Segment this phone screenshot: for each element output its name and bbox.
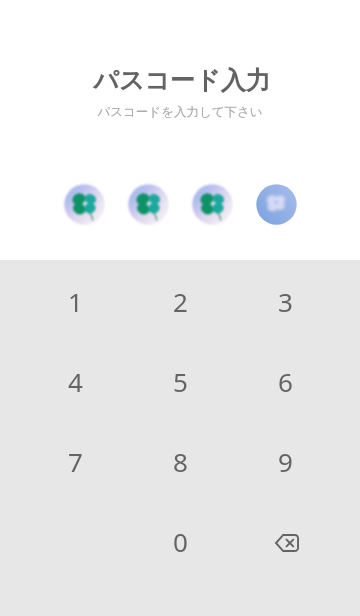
staticText: 8: [173, 444, 188, 479]
button[interactable]: 3: [233, 261, 338, 341]
staticText: 0: [173, 524, 188, 559]
staticText: 7: [68, 444, 83, 479]
staticText: 4: [68, 364, 83, 399]
button[interactable]: 4: [22, 341, 128, 421]
button[interactable]: 9: [233, 421, 338, 501]
button[interactable]: 2: [128, 261, 233, 341]
staticText: 9: [278, 444, 293, 479]
staticText: 3: [278, 284, 293, 319]
button[interactable]: Delete: [233, 501, 338, 581]
staticText: パスコード入力: [2, 65, 360, 96]
button[interactable]: 1: [22, 261, 128, 341]
button[interactable]: 5: [128, 341, 233, 421]
staticText: 2: [173, 284, 188, 319]
button[interactable]: 0: [128, 501, 233, 581]
staticText: 6: [278, 364, 293, 399]
staticText: 5: [173, 364, 188, 399]
button[interactable]: 7: [22, 421, 128, 501]
button[interactable]: 6: [233, 341, 338, 421]
staticText: パスコードを入力して下さい: [0, 104, 360, 120]
button[interactable]: 8: [128, 421, 233, 501]
staticText: 1: [68, 284, 83, 319]
